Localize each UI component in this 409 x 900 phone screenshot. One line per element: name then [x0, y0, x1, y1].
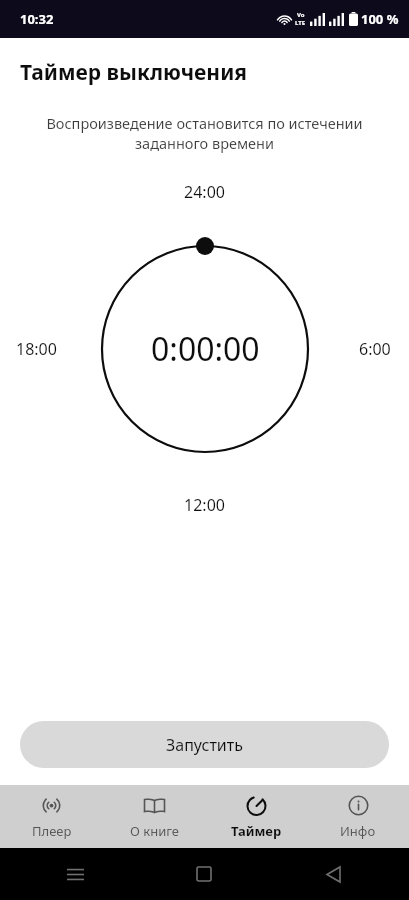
staticText: Инфо	[340, 822, 376, 840]
staticText: Воспроизведение остановится по истечении…	[20, 113, 389, 154]
button[interactable]: Запустить	[20, 721, 389, 768]
staticText: Запустить	[166, 734, 243, 756]
button[interactable]: Плеер	[0, 785, 103, 848]
staticText: 18:00	[16, 338, 57, 360]
staticText: Плеер	[32, 822, 72, 840]
staticText: Vo	[297, 11, 305, 19]
button[interactable]: Timer dial	[99, 243, 311, 455]
button[interactable]: Home	[187, 857, 221, 891]
button[interactable]: Таймер	[205, 785, 307, 848]
staticText: 6:00	[359, 338, 391, 360]
staticText: 10:32	[20, 10, 54, 28]
button[interactable]: Back	[316, 857, 350, 891]
button[interactable]: Recents	[58, 857, 92, 891]
staticText: 24:00	[184, 181, 225, 203]
staticText: Таймер	[231, 822, 282, 840]
staticText: Таймер выключения	[20, 58, 389, 87]
staticText: 0:00:00	[151, 327, 260, 371]
staticText: 12:00	[184, 494, 225, 516]
button[interactable]: О книге	[103, 785, 205, 848]
staticText: LTE	[295, 19, 306, 27]
staticText: О книге	[130, 822, 179, 840]
button[interactable]: Инфо	[307, 785, 409, 848]
staticText: 100 %	[361, 10, 399, 28]
